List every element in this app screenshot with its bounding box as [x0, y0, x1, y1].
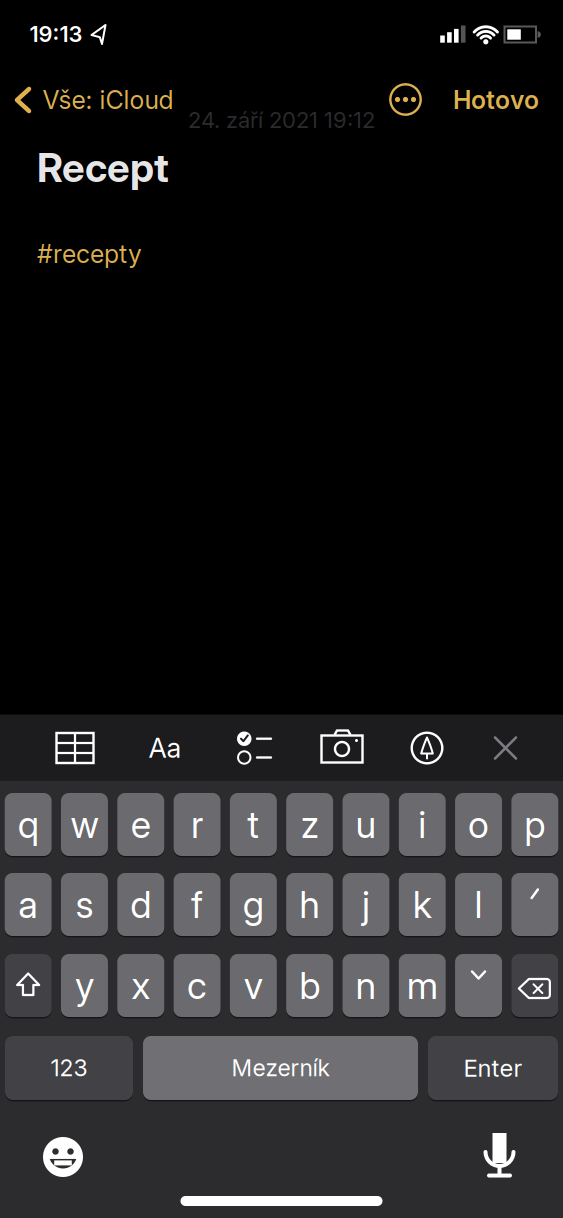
staticText: Hotovo — [453, 85, 539, 115]
button[interactable]: i — [399, 793, 446, 856]
staticText: #recepty — [37, 239, 142, 269]
staticText: q — [18, 802, 39, 847]
staticText: f — [191, 882, 203, 927]
staticText: e — [131, 802, 151, 847]
button[interactable]: More — [383, 77, 427, 121]
button[interactable]: x — [117, 954, 164, 1017]
staticText: m — [407, 963, 438, 1008]
staticText: i — [418, 802, 426, 847]
button[interactable]: Back, Vše: iCloud — [4, 77, 186, 122]
staticText: c — [187, 963, 207, 1008]
staticText: s — [75, 882, 93, 927]
staticText: k — [413, 882, 432, 927]
staticText: r — [191, 802, 203, 847]
staticText: 19:13 — [29, 21, 82, 47]
staticText: Vše: iCloud — [42, 85, 173, 115]
button[interactable]: g — [230, 873, 277, 936]
staticText: t — [247, 802, 259, 847]
button[interactable]: w — [61, 793, 108, 856]
button[interactable]: Shift — [5, 954, 52, 1017]
staticText: Aa — [148, 732, 181, 764]
button[interactable]: Camera — [320, 726, 364, 770]
button[interactable]: 123 — [5, 1036, 133, 1100]
staticText: j — [362, 882, 370, 927]
button[interactable]: p — [511, 793, 558, 856]
button[interactable]: Checklist — [231, 725, 275, 769]
button[interactable]: u — [342, 793, 389, 856]
staticText: 24. září 2021 19:12 — [188, 107, 375, 133]
button[interactable]: f — [173, 873, 220, 936]
button[interactable]: Close — [483, 726, 527, 770]
button[interactable]: s — [61, 873, 108, 936]
staticText: d — [130, 882, 151, 927]
staticText: Recept — [37, 143, 169, 192]
button[interactable]: Enter — [428, 1036, 558, 1100]
staticText: l — [474, 882, 482, 927]
staticText: y — [75, 963, 94, 1008]
staticText: n — [355, 963, 376, 1008]
button[interactable]: b — [286, 954, 333, 1017]
button[interactable]: Insert table — [53, 726, 97, 770]
button[interactable]: Dictate — [477, 1130, 521, 1180]
button[interactable]: a — [5, 873, 52, 936]
button[interactable]: #recepty — [37, 239, 142, 269]
button[interactable]: k — [399, 873, 446, 936]
staticText: h — [299, 882, 320, 927]
button[interactable]: ˇ — [455, 954, 502, 1017]
button[interactable]: t — [230, 793, 277, 856]
button[interactable]: n — [342, 954, 389, 1017]
staticText: z — [301, 802, 319, 847]
button[interactable]: r — [173, 793, 220, 856]
staticText: a — [18, 882, 38, 927]
button[interactable]: z — [286, 793, 333, 856]
button[interactable]: j — [342, 873, 389, 936]
staticText: b — [299, 963, 320, 1008]
button[interactable]: l — [455, 873, 502, 936]
staticText: g — [243, 882, 264, 927]
button[interactable]: h — [286, 873, 333, 936]
button[interactable]: q — [5, 793, 52, 856]
button[interactable]: o — [455, 793, 502, 856]
button[interactable]: v — [230, 954, 277, 1017]
button[interactable]: Markup — [405, 726, 449, 770]
staticText: o — [468, 802, 489, 847]
staticText: Mezerník — [231, 1054, 329, 1082]
staticText: 123 — [50, 1054, 87, 1082]
button[interactable]: e — [117, 793, 164, 856]
staticText: w — [70, 802, 98, 847]
button[interactable]: Hotovo — [436, 78, 556, 122]
button[interactable]: c — [173, 954, 220, 1017]
staticText: v — [244, 963, 263, 1008]
staticText: Enter — [463, 1053, 522, 1082]
button[interactable]: Emoji — [41, 1135, 85, 1179]
button[interactable]: Format — [139, 726, 191, 770]
button[interactable]: d — [117, 873, 164, 936]
button[interactable]: m — [399, 954, 446, 1017]
staticText: x — [131, 963, 150, 1008]
staticText: p — [524, 802, 545, 847]
button[interactable]: y — [61, 954, 108, 1017]
button[interactable]: Mezerník — [143, 1036, 418, 1100]
staticText: u — [355, 802, 376, 847]
button[interactable]: ´ — [511, 873, 558, 936]
button[interactable]: Delete — [511, 954, 558, 1017]
